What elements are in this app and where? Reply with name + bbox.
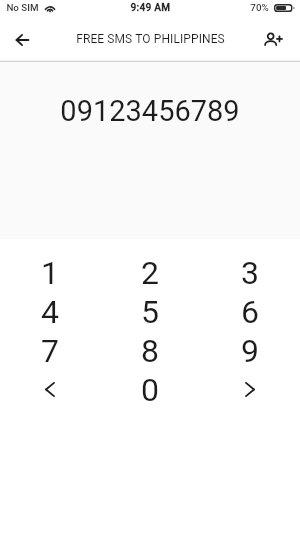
button[interactable]: 1: [0, 253, 100, 292]
button[interactable]: 4: [0, 292, 100, 331]
button[interactable]: 5: [100, 292, 200, 331]
button[interactable]: Add contact: [256, 23, 300, 62]
button[interactable]: 8: [100, 331, 200, 370]
staticText: 8: [141, 332, 159, 370]
staticText: 7: [41, 332, 59, 370]
staticText: 70%: [250, 2, 269, 13]
staticText: 0: [141, 371, 159, 409]
button[interactable]: 3: [200, 253, 300, 292]
staticText: 6: [241, 293, 259, 331]
staticText: 09123456789: [60, 94, 240, 128]
button[interactable]: 7: [0, 331, 100, 370]
staticText: 9:49 AM: [130, 2, 171, 14]
button[interactable]: Next: [200, 370, 300, 409]
button[interactable]: Back: [0, 23, 45, 62]
staticText: 3: [241, 254, 259, 292]
staticText: 2: [141, 254, 159, 292]
button[interactable]: 9: [200, 331, 300, 370]
staticText: No SIM: [6, 2, 39, 13]
staticText: 1: [41, 254, 59, 292]
staticText: FREE SMS TO PHILIPPINES: [76, 32, 225, 46]
staticText: 9: [241, 332, 259, 370]
button[interactable]: 0: [100, 370, 200, 409]
button[interactable]: 6: [200, 292, 300, 331]
button[interactable]: Delete: [0, 370, 100, 409]
staticText: 5: [141, 293, 159, 331]
staticText: 4: [41, 293, 59, 331]
button[interactable]: 2: [100, 253, 200, 292]
